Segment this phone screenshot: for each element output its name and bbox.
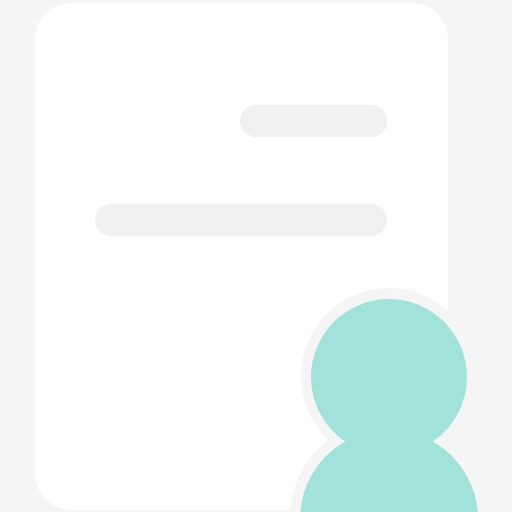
button[interactable]: Contact document with profile avatar: [0, 0, 512, 512]
